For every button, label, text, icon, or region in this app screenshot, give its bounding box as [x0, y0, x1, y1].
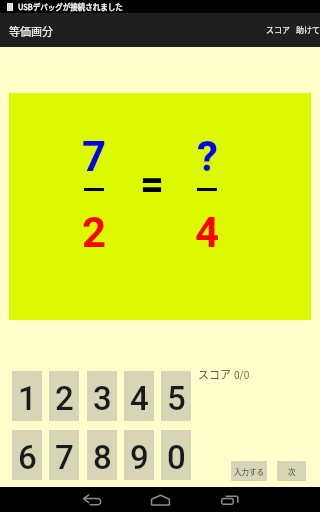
button[interactable]: 4: [124, 371, 154, 421]
staticText: 3: [93, 379, 112, 418]
button[interactable]: 入力する: [231, 461, 267, 481]
staticText: 次: [288, 466, 296, 477]
button[interactable]: 7: [49, 430, 79, 480]
staticText: =: [140, 160, 165, 209]
staticText: 6: [18, 438, 37, 477]
staticText: 2: [55, 379, 74, 418]
staticText: 2: [82, 208, 107, 257]
staticText: スコア: [266, 24, 290, 36]
button[interactable]: 9: [124, 430, 154, 480]
staticText: 7: [82, 132, 107, 181]
button[interactable]: 5: [161, 371, 191, 421]
button[interactable]: 助けて: [293, 13, 320, 47]
staticText: 0: [167, 438, 186, 477]
staticText: 0/0: [234, 370, 250, 382]
staticText: 助けて: [296, 24, 320, 36]
staticText: 4: [195, 208, 220, 257]
staticText: スコア: [198, 366, 231, 382]
staticText: 入力する: [234, 466, 264, 477]
staticText: 7: [55, 438, 74, 477]
staticText: 4: [130, 379, 149, 418]
staticText: ?: [197, 132, 218, 181]
staticText: 9: [130, 438, 149, 477]
button[interactable]: 2: [49, 371, 79, 421]
staticText: 等価画分: [9, 23, 53, 39]
button[interactable]: Home: [137, 487, 183, 512]
button[interactable]: 3: [87, 371, 117, 421]
staticText: USBデバッグが接続されました: [18, 1, 123, 12]
button[interactable]: Back: [69, 487, 115, 512]
button[interactable]: 8: [87, 430, 117, 480]
staticText: 8: [93, 438, 112, 477]
button[interactable]: 6: [12, 430, 42, 480]
button[interactable]: 次: [277, 461, 306, 481]
button[interactable]: スコア: [258, 13, 293, 47]
button[interactable]: 1: [12, 371, 42, 421]
button[interactable]: 0: [161, 430, 191, 480]
staticText: 1: [18, 379, 37, 418]
button[interactable]: Recent apps: [206, 487, 252, 512]
staticText: 5: [167, 379, 186, 418]
